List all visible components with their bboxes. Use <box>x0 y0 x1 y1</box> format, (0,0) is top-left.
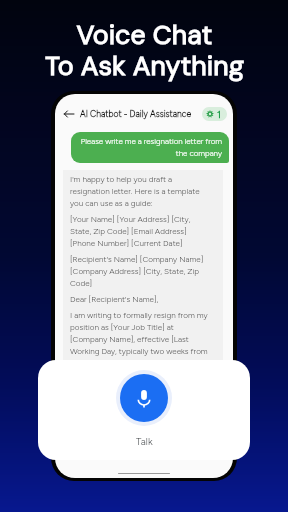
staticText: I am writing to formally resign from my … <box>70 310 210 356</box>
staticText: Voice Chat To Ask Anything <box>45 18 244 83</box>
staticText: AI Chatbot - Daily Assistance <box>80 109 192 119</box>
staticText: I'm happy to help you draft a resignatio… <box>70 174 210 208</box>
button[interactable]: Talk <box>120 374 168 422</box>
button[interactable]: Back <box>64 109 74 119</box>
staticText: Dear [Recipient's Name], <box>70 294 159 304</box>
button[interactable]: Credits 1 <box>202 107 227 121</box>
staticText: Please write me a resignation letter fro… <box>76 136 222 158</box>
staticText: [Your Name] [Your Address] [City, State,… <box>70 214 210 248</box>
staticText: 1 <box>217 109 221 120</box>
staticText: Talk <box>136 435 153 447</box>
staticText: [Recipient's Name] [Company Name] [Compa… <box>70 254 210 288</box>
